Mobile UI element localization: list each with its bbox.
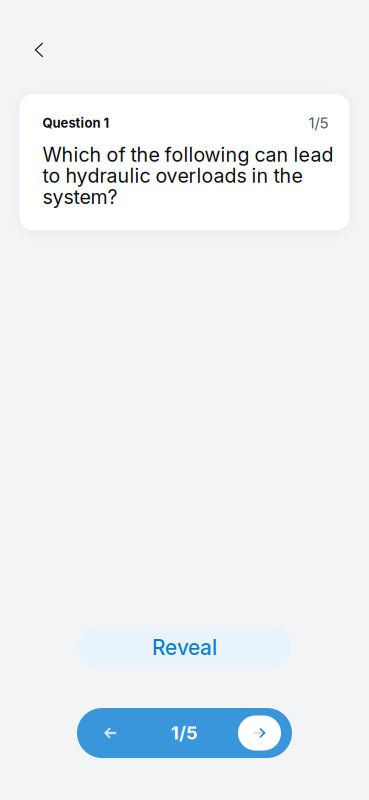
- staticText: 1/5: [308, 114, 328, 132]
- button[interactable]: Next question: [238, 715, 281, 750]
- button[interactable]: Previous question: [77, 708, 143, 758]
- button[interactable]: Reveal: [77, 627, 291, 668]
- staticText: Which of the following can lead to hydra…: [42, 144, 333, 207]
- staticText: 1/5: [171, 722, 198, 744]
- staticText: Question 1: [42, 115, 109, 131]
- staticText: Reveal: [152, 635, 217, 660]
- button[interactable]: Back: [21, 32, 57, 68]
